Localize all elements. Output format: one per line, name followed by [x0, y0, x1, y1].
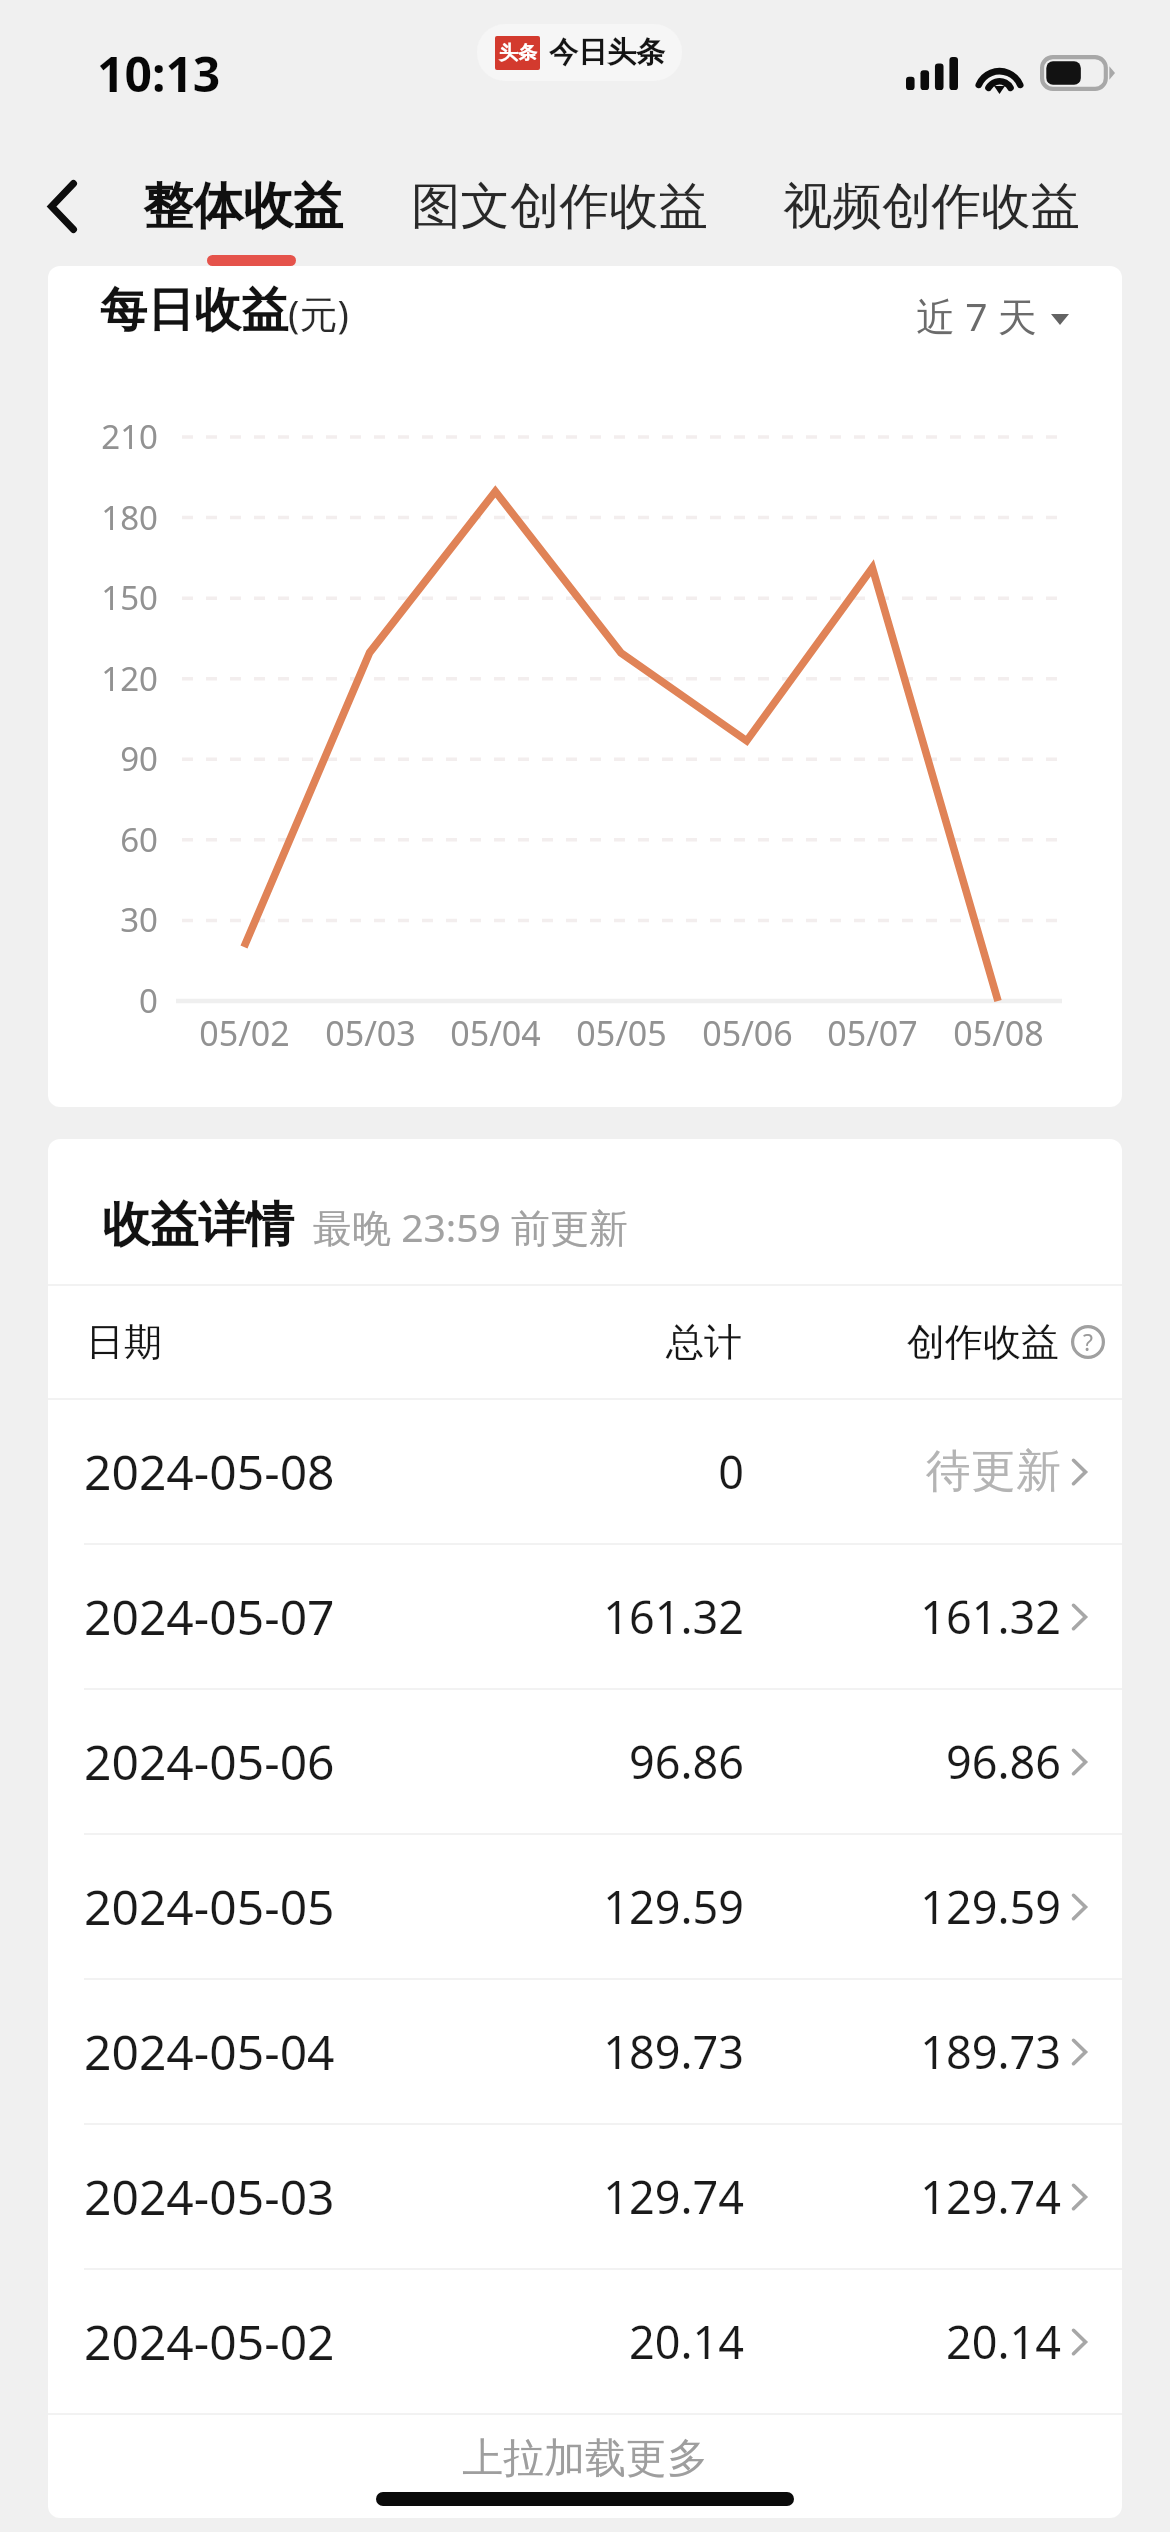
staticText: 每日收益 [100, 281, 288, 340]
button[interactable]: 2024-05-03 [48, 2125, 1122, 2268]
button[interactable]: 2024-05-06 [48, 1690, 1122, 1833]
staticText: 2024-05-04 [84, 2019, 335, 2084]
staticText: 待更新 [926, 1443, 1061, 1500]
staticText: 189.73 [920, 2021, 1061, 2082]
staticText: 120 [101, 656, 158, 701]
staticText: 最晚 23:59 前更新 [313, 1200, 628, 1253]
staticText: 2024-05-06 [84, 1729, 335, 1794]
button[interactable]: 2024-05-04 [48, 1980, 1122, 2123]
staticText: 日期 [86, 1318, 162, 1366]
button[interactable]: 视频创作收益 [783, 175, 1080, 237]
staticText: 05/03 [325, 1010, 416, 1056]
staticText: 创作收益 [907, 1318, 1059, 1366]
staticText: (元) [288, 287, 349, 339]
staticText: 头条 [499, 41, 537, 65]
staticText: 图文创作收益 [411, 175, 708, 237]
staticText: 0 [718, 1441, 744, 1502]
staticText: 10:13 [97, 41, 221, 106]
staticText: 2024-05-08 [84, 1439, 335, 1504]
button[interactable]: 近 7 天 [916, 289, 1069, 342]
button[interactable]: Help [1071, 1325, 1105, 1359]
staticText: 180 [101, 495, 158, 540]
button[interactable]: 图文创作收益 [411, 175, 708, 237]
staticText: 05/02 [199, 1010, 290, 1056]
button[interactable]: 整体收益 [143, 175, 343, 238]
staticText: 05/08 [953, 1010, 1044, 1056]
staticText: 129.59 [920, 1876, 1061, 1937]
staticText: 210 [101, 414, 158, 459]
staticText: 整体收益 [143, 175, 343, 238]
staticText: 05/06 [702, 1010, 793, 1056]
staticText: 60 [120, 817, 158, 862]
staticText: 2024-05-05 [84, 1874, 335, 1939]
button[interactable]: 2024-05-08 [48, 1400, 1122, 1543]
staticText: 总计 [666, 1318, 742, 1366]
staticText: 今日头条 [549, 34, 665, 71]
staticText: 近 7 天 [916, 289, 1037, 342]
button[interactable]: 上拉加载更多 [48, 2415, 1122, 2518]
staticText: 96.86 [945, 1731, 1061, 1792]
button[interactable]: 2024-05-05 [48, 1835, 1122, 1978]
staticText: 129.74 [920, 2166, 1061, 2227]
staticText: 150 [101, 575, 158, 620]
button[interactable]: Back [22, 162, 103, 251]
staticText: 129.59 [603, 1876, 744, 1937]
staticText: 30 [120, 897, 158, 942]
staticText: 收益详情 [102, 1195, 294, 1255]
staticText: 161.32 [920, 1586, 1061, 1647]
staticText: 96.86 [628, 1731, 744, 1792]
button[interactable]: 2024-05-02 [48, 2270, 1122, 2413]
staticText: 05/07 [827, 1010, 918, 1056]
staticText: ? [1083, 1326, 1093, 1357]
staticText: 05/04 [450, 1010, 541, 1056]
staticText: 上拉加载更多 [462, 2433, 708, 2485]
staticText: 161.32 [603, 1586, 744, 1647]
staticText: 20.14 [628, 2311, 744, 2372]
staticText: 0 [139, 978, 158, 1023]
staticText: 189.73 [603, 2021, 744, 2082]
staticText: 05/05 [576, 1010, 667, 1056]
staticText: 20.14 [945, 2311, 1061, 2372]
staticText: 视频创作收益 [783, 175, 1080, 237]
staticText: 2024-05-07 [84, 1584, 335, 1649]
button[interactable]: 2024-05-07 [48, 1545, 1122, 1688]
staticText: 129.74 [603, 2166, 744, 2227]
staticText: 2024-05-02 [84, 2309, 335, 2374]
staticText: 90 [120, 736, 158, 781]
staticText: 2024-05-03 [84, 2164, 335, 2229]
